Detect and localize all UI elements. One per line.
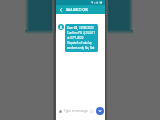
button[interactable]: Attach [88,108,94,114]
staticText: AAA ABCD (28) [66,8,89,12]
staticText: Dear All, 18/08/2020 Confirm PO 4,23.0.0… [67,26,95,50]
button[interactable]: Contact avatar [58,24,64,30]
button[interactable]: Dear All, 18/08/2020 Confirm PO 4,23.0.0… [65,24,98,52]
button[interactable]: Send [96,107,104,115]
button[interactable]: Emoji [57,108,64,115]
staticText: Type a message [64,109,88,113]
button[interactable]: Back [58,7,64,13]
